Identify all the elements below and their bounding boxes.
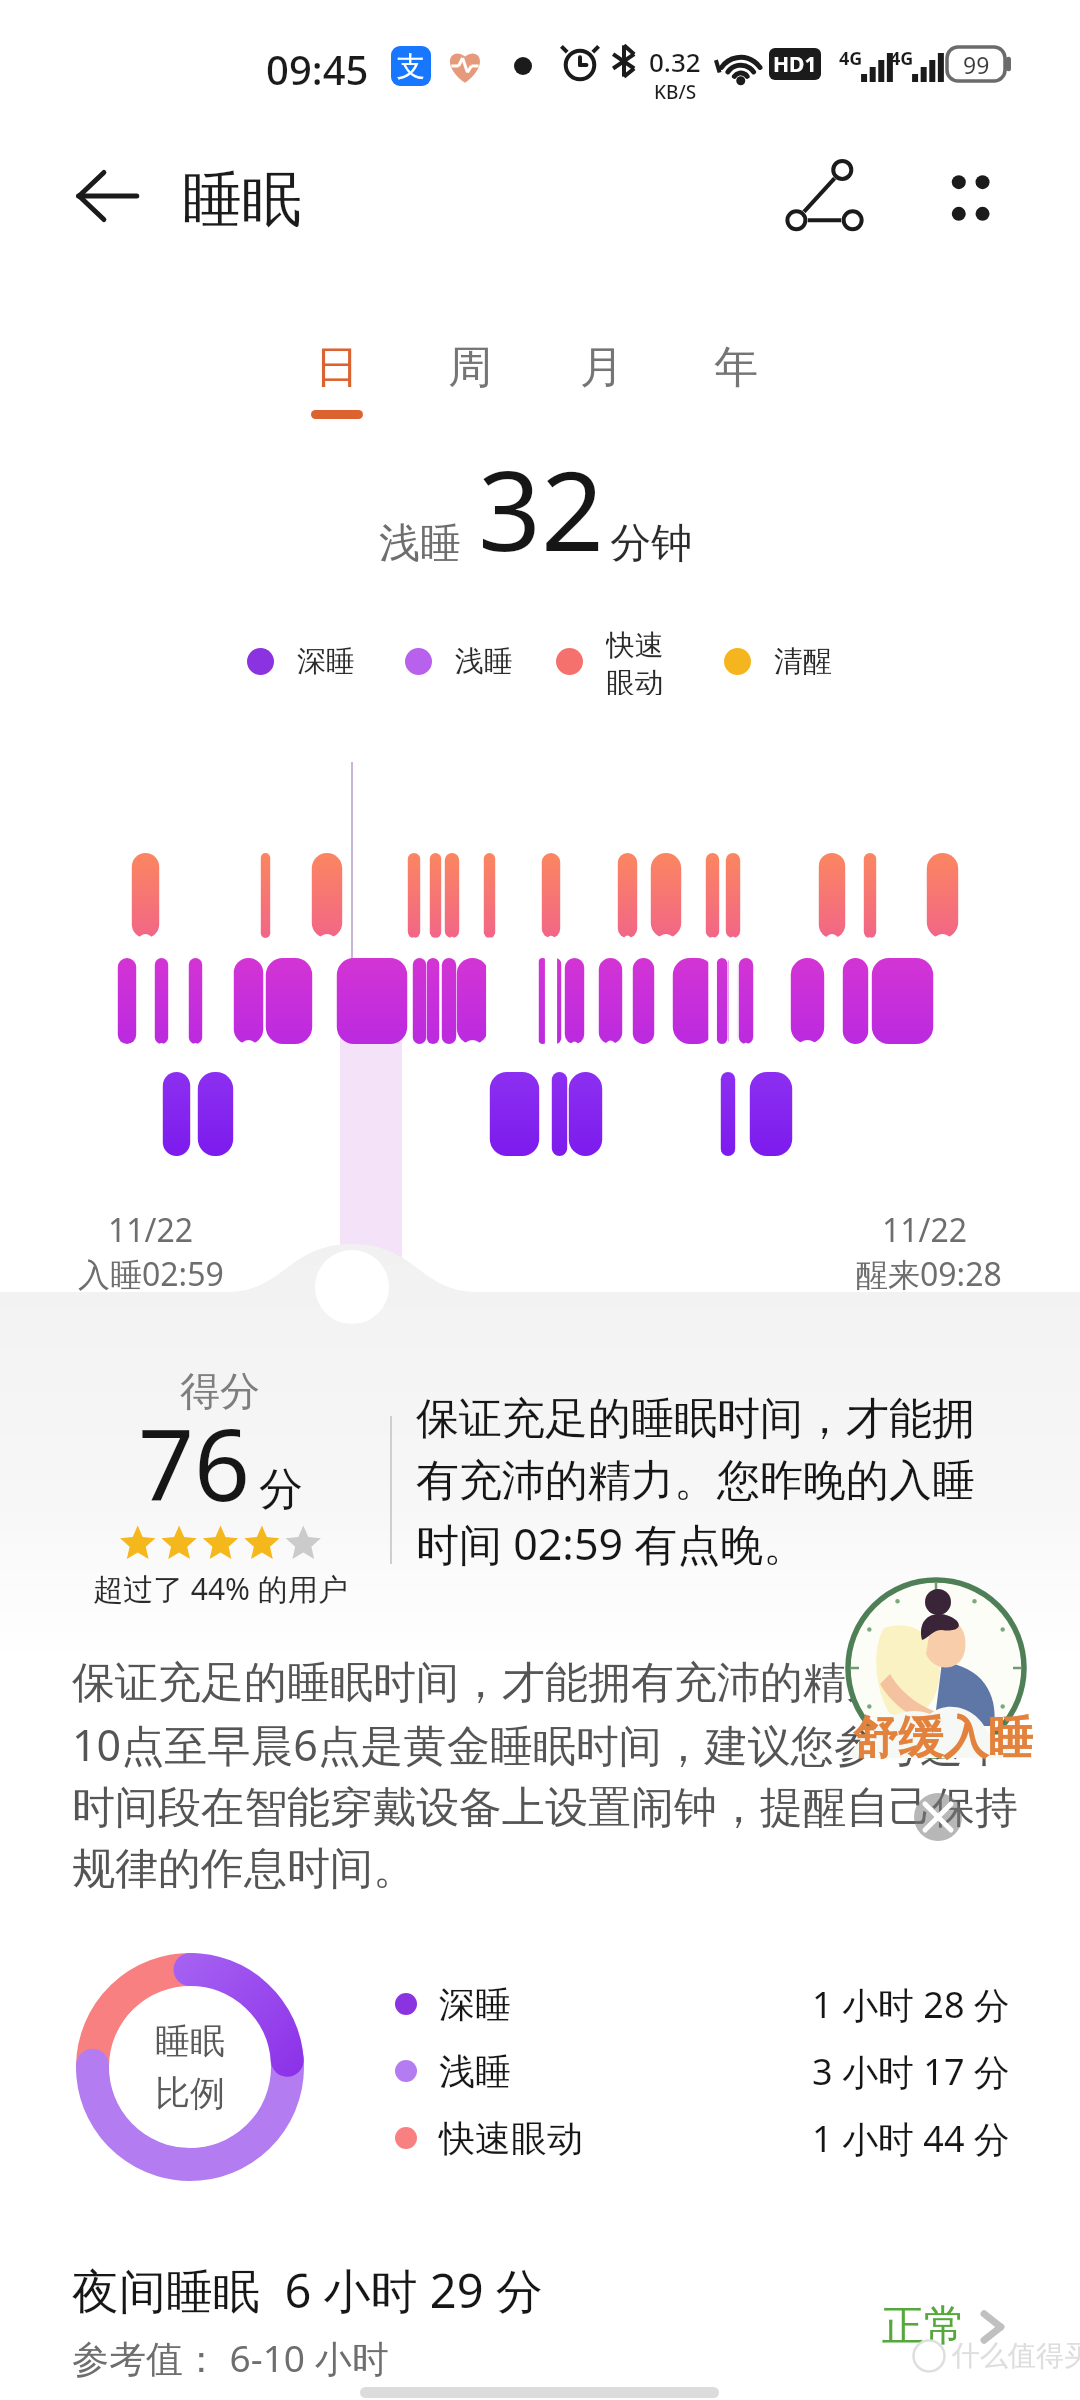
staticText: HD1 [773,50,817,79]
button[interactable]: 浅睡 [395,2042,1010,2100]
staticText: 支 [397,49,425,84]
staticText: 参考值： 6-10 小时 [72,2332,389,2383]
staticText: 正常 [882,2300,966,2353]
staticText: 清醒 [774,643,832,680]
staticText: 浅睡 [455,643,513,680]
staticText: 76 [138,1396,251,1529]
staticText: 快速 眼动 [606,627,664,695]
staticText: 周 [448,340,492,395]
staticText: 舒缓入睡 [853,1710,1033,1767]
staticText: 4G [839,46,863,71]
staticText: 分 [259,1462,303,1517]
staticText: 3 小时 17 分 [812,2047,1010,2096]
button[interactable]: 快速眼动 [395,2109,1010,2167]
staticText: 4G [890,46,914,71]
button[interactable]: Share [776,148,876,248]
staticText: 什么值得买 [952,2338,1080,2373]
staticText: 深睡 [439,1982,511,2027]
staticText: 分钟 [610,518,692,570]
staticText: 入睡02:59 [78,1252,224,1296]
staticText: 睡眠 [155,2019,225,2063]
staticText: 11/22 [108,1208,194,1252]
staticText: 11/22 [882,1208,968,1252]
staticText: 夜间睡眠 6 小时 29 分 [72,2258,543,2322]
staticText: 0.32 [649,44,701,79]
button[interactable]: Close ad [914,1793,962,1841]
staticText: 月 [580,340,624,395]
staticText: 醒来09:28 [856,1252,1002,1296]
button[interactable]: 周 [422,340,518,440]
staticText: 1 小时 44 分 [812,2114,1010,2163]
button[interactable]: Back [67,156,147,236]
staticText: 1 小时 28 分 [812,1980,1010,2029]
button[interactable]: 快速 眼动 [556,627,664,695]
staticText: 保证充足的睡眠时间，才能拥有充沛的精力。晚上10点至早晨6点是黄金睡眠时间，建议… [72,1656,1022,1895]
staticText: 超过了 44% 的用户 [93,1568,348,1609]
staticText: 比例 [155,2071,225,2115]
button[interactable]: 深睡 [395,1975,1010,2033]
staticText: 快速眼动 [439,2116,583,2161]
staticText: KB/S [654,79,697,105]
staticText: 得分 [180,1366,260,1416]
button[interactable]: 夜间睡眠 6 小时 29 分 [72,2258,1012,2388]
staticText: 32 [478,433,604,583]
button[interactable]: 11/22 [78,1208,224,1296]
button[interactable]: More options [920,148,1020,248]
staticText: 日 [315,340,359,395]
button[interactable]: 月 [554,340,650,440]
button[interactable]: 深睡 [247,627,355,695]
button[interactable]: 浅睡 [405,627,513,695]
staticText: 睡眠 [182,162,302,238]
staticText: 浅睡 [439,2049,511,2094]
staticText: 年 [714,340,758,395]
staticText: 保证充足的睡眠时间，才能拥有充沛的精力。您昨晚的入睡时间 02:59 有点晚。 [416,1392,996,1572]
button[interactable]: 年 [688,340,784,440]
staticText: 深睡 [297,643,355,680]
staticText: 浅睡 [379,518,461,570]
button[interactable]: 得分 [85,1360,355,1620]
button[interactable]: 日 [289,340,385,440]
button[interactable]: 清醒 [724,627,832,695]
button[interactable]: Sleep aid advertisement [843,1576,1029,1756]
staticText: 99 [963,49,990,80]
staticText: 09:45 [266,42,369,96]
